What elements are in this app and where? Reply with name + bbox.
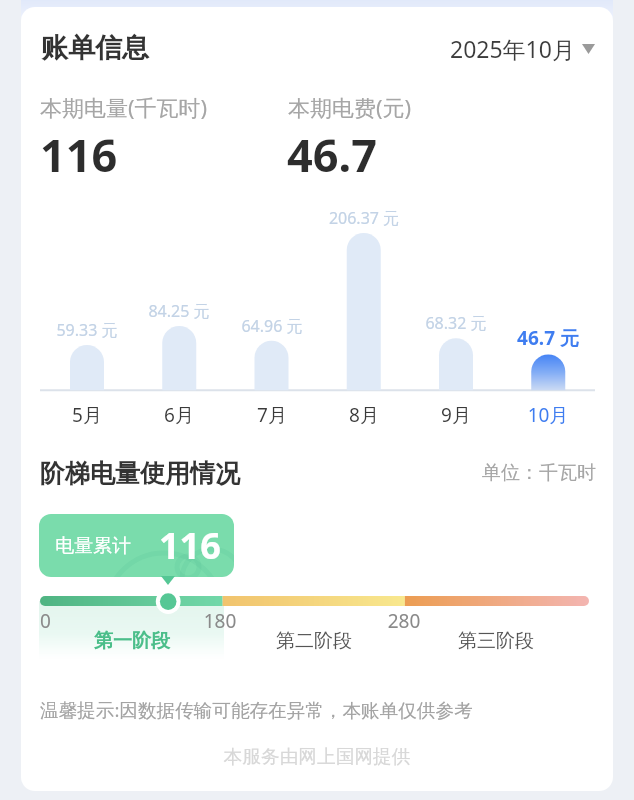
staticText: 第三阶段 (446, 629, 546, 653)
staticText: 10月 (502, 402, 594, 428)
staticText: 账单信息 (41, 31, 149, 65)
staticText: 206.37 元 (304, 207, 424, 229)
staticText: 6月 (133, 402, 225, 428)
staticText: 46.7 元 (488, 325, 608, 351)
staticText: 第一阶段 (82, 629, 182, 653)
button[interactable]: 第三阶段 (446, 629, 546, 653)
staticText: 180 (170, 608, 270, 634)
staticText: 单位：千瓦时 (482, 461, 596, 485)
button[interactable]: 5月 (41, 200, 133, 428)
staticText: 84.25 元 (119, 300, 239, 322)
staticText: 阶梯电量使用情况 (40, 458, 240, 489)
staticText: 9月 (410, 402, 502, 428)
staticText: 64.96 元 (212, 315, 332, 337)
staticText: 5月 (41, 402, 133, 428)
staticText: 59.33 元 (27, 319, 147, 341)
button[interactable]: 7月 (226, 200, 318, 428)
button[interactable]: 选择账单月份 2025年10月 (444, 29, 601, 68)
button[interactable]: 8月 (318, 200, 410, 428)
button[interactable]: 6月 (133, 200, 225, 428)
staticText: 电量累计 (55, 534, 131, 558)
staticText: 116 (159, 521, 221, 570)
button[interactable]: 第二阶段 (264, 629, 364, 653)
staticText: 46.7 (287, 124, 377, 185)
staticText: 0 (40, 608, 51, 634)
button[interactable]: 第一阶段 (82, 629, 182, 653)
button[interactable]: 10月 (502, 200, 594, 428)
staticText: 第二阶段 (264, 629, 364, 653)
staticText: 116 (40, 124, 118, 185)
staticText: 7月 (226, 402, 318, 428)
staticText: 2025年10月 (450, 33, 575, 64)
staticText: 本期电费(元) (288, 92, 412, 122)
staticText: 280 (354, 608, 454, 634)
button[interactable]: 电量累计 (39, 514, 234, 577)
staticText: 本期电量(千瓦时) (40, 92, 208, 122)
staticText: 本服务由网上国网提供 (17, 745, 617, 769)
staticText: 68.32 元 (396, 312, 516, 334)
staticText: 温馨提示:因数据传输可能存在异常，本账单仅供参考 (40, 697, 473, 722)
button[interactable]: 9月 (410, 200, 502, 428)
staticText: 8月 (318, 402, 410, 428)
